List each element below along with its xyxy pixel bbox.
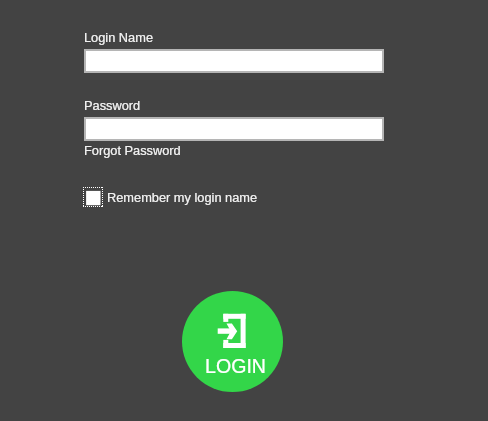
staticText: Forgot Password (84, 143, 181, 157)
button[interactable]: Forgot Password (84, 143, 184, 159)
button[interactable]: Log in (182, 291, 283, 392)
button[interactable]: Remember my login name (83, 187, 263, 208)
staticText: Password (84, 98, 141, 112)
staticText: LOGIN (205, 355, 266, 377)
staticText: Remember my login name (107, 190, 258, 204)
other: Log in (216, 312, 246, 372)
staticText: Login Name (84, 30, 154, 44)
